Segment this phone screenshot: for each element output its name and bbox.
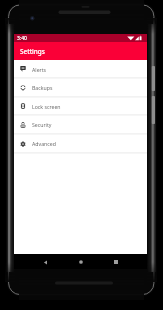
staticText: Alerts [32,66,47,73]
button[interactable]: Home [76,257,86,267]
button[interactable]: Lock screen [14,97,147,115]
staticText: Lock screen [32,103,61,110]
button[interactable]: Security [14,115,147,134]
staticText: 3:40 [17,35,27,42]
staticText: Advanced [32,140,56,147]
staticText: Security [32,121,52,128]
button[interactable]: Recents [111,257,121,267]
button[interactable]: Alerts [14,60,147,78]
button[interactable]: Back [40,257,50,267]
staticText: Backups [32,84,53,91]
staticText: Settings [20,47,45,56]
button[interactable]: Backups [14,78,147,97]
button[interactable]: Advanced [14,134,147,153]
